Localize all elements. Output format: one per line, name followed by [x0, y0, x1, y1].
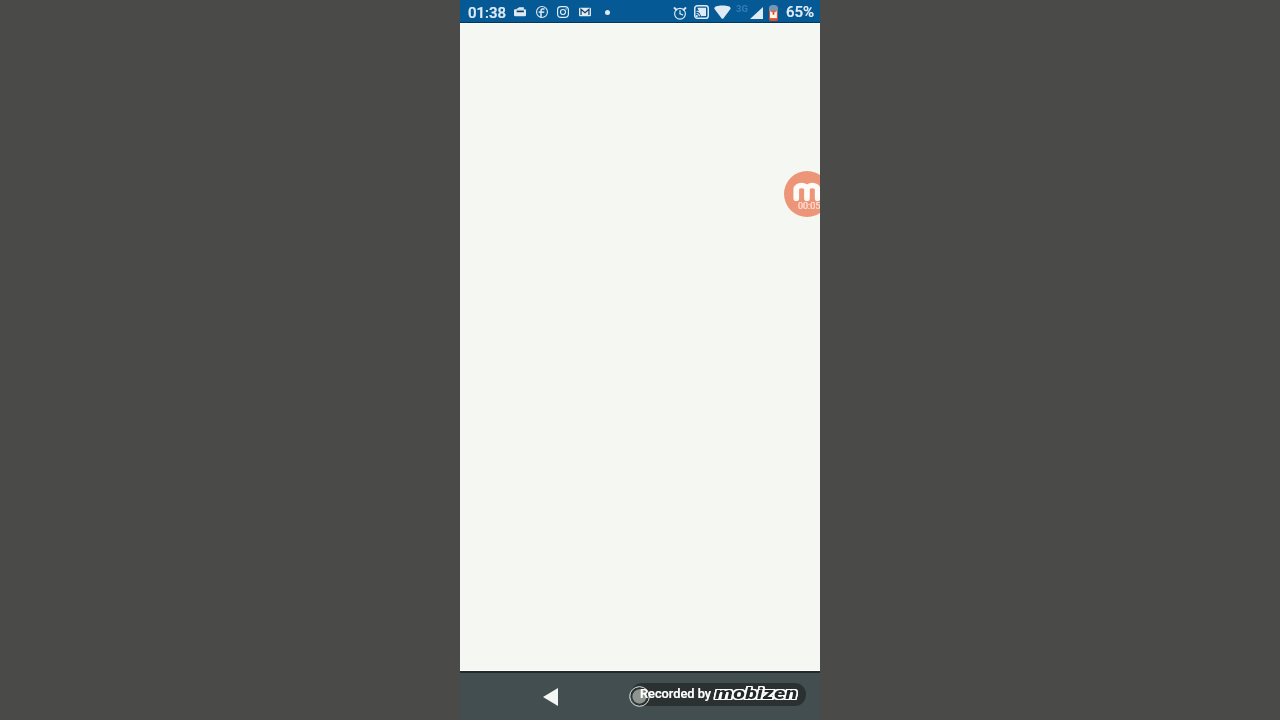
staticText: 65%	[786, 3, 815, 21]
staticText: mobizen	[715, 683, 798, 702]
staticText: 3G	[736, 3, 748, 14]
staticText: Recorded by	[640, 686, 712, 701]
staticText: mobizen	[714, 683, 797, 702]
staticText: 00:05	[798, 201, 820, 212]
staticText: mobizen	[716, 685, 799, 704]
button[interactable]: Recorded by	[629, 683, 806, 710]
staticText: mobizen	[714, 684, 797, 703]
staticText: mobizen	[716, 683, 799, 702]
staticText: mobizen	[715, 684, 798, 703]
staticText: mobizen	[714, 685, 797, 704]
staticText: mobizen	[716, 684, 799, 703]
staticText: mobizen	[715, 685, 798, 704]
button[interactable]: Mobizen recorder	[784, 171, 820, 217]
button[interactable]: Back	[528, 676, 572, 718]
staticText: 01:38	[468, 4, 507, 22]
